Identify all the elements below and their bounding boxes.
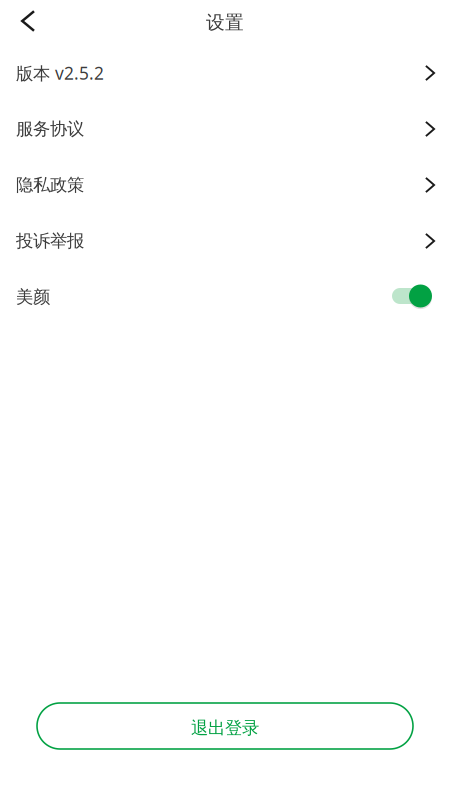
staticText: 服务协议 <box>16 118 84 140</box>
button[interactable]: 美颜 <box>0 269 450 325</box>
button[interactable]: 退出登录 <box>37 703 413 749</box>
staticText: 版本 v2.5.2 <box>16 61 104 84</box>
button[interactable]: 隐私政策 <box>0 157 450 213</box>
staticText: 美颜 <box>16 286 50 308</box>
button[interactable]: 版本 v2.5.2 <box>0 45 450 101</box>
staticText: 隐私政策 <box>16 174 84 196</box>
staticText: 设置 <box>206 11 244 34</box>
button[interactable]: Back <box>0 1 49 43</box>
staticText: 退出登录 <box>191 717 259 739</box>
button[interactable]: 投诉举报 <box>0 213 450 269</box>
staticText: 投诉举报 <box>16 230 84 252</box>
button[interactable]: 服务协议 <box>0 101 450 157</box>
